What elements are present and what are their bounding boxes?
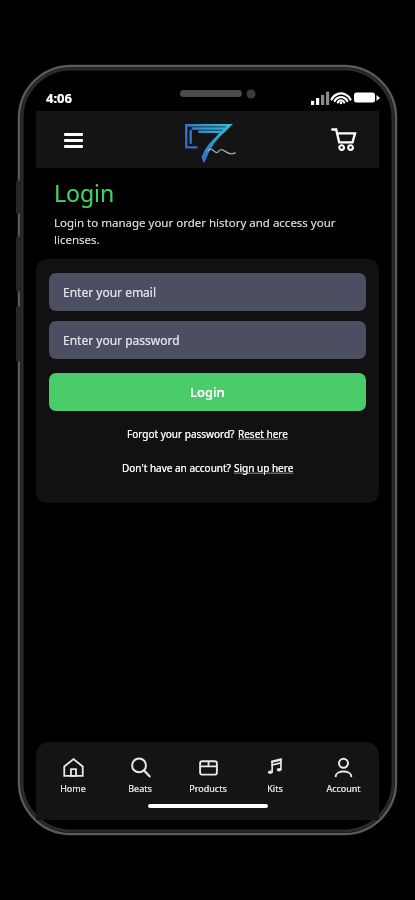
staticText: Don't have an account? [122, 461, 234, 475]
staticText: Login to manage your order history and a… [54, 215, 373, 247]
staticText: Beats [128, 782, 152, 794]
staticText: Forgot your password? [127, 427, 238, 441]
button[interactable]: Enter your email [49, 273, 366, 311]
staticText: Home [60, 782, 86, 794]
button[interactable]: Kits [244, 754, 306, 796]
staticText: Products [189, 782, 227, 794]
staticText: Account [326, 782, 361, 794]
staticText: Reset here [238, 427, 288, 441]
button[interactable]: Sign up here [234, 461, 294, 475]
staticText: 4:06 [46, 89, 72, 107]
button[interactable]: Login [49, 373, 366, 411]
staticText: Sign up here [234, 461, 294, 475]
button[interactable]: Menu [56, 123, 90, 157]
staticText: Login [54, 177, 115, 208]
staticText: Enter your password [63, 332, 180, 348]
button[interactable]: Reset here [238, 427, 288, 441]
button[interactable]: Products [177, 754, 239, 796]
button[interactable]: Enter your password [49, 321, 366, 359]
button[interactable]: Account [312, 754, 374, 796]
button[interactable]: Beats [109, 754, 171, 796]
button[interactable]: Cart [327, 123, 361, 157]
staticText: Enter your email [63, 284, 157, 300]
staticText: Login [190, 383, 225, 401]
button[interactable]: Home [42, 754, 104, 796]
staticText: Kits [267, 782, 283, 794]
